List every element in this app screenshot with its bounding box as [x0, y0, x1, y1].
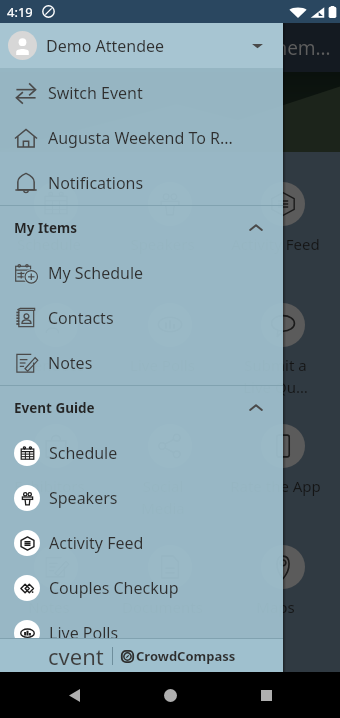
button[interactable]: Demo Attendee [0, 23, 283, 68]
button[interactable]: Speakers [0, 475, 283, 520]
button[interactable]: Switch Event [0, 70, 283, 115]
staticText: Documents [122, 597, 203, 617]
other: Collapse Event Guide [249, 401, 263, 415]
staticText: Switch Event [48, 82, 143, 104]
staticText: My Schedule [48, 262, 144, 284]
button[interactable]: Schedule [0, 152, 114, 273]
staticText: Live Polls [49, 622, 119, 644]
button[interactable]: Couples Checkup [0, 565, 283, 610]
staticText: Notifications [48, 172, 144, 194]
button[interactable]: Speakers [114, 152, 227, 273]
staticText: cvent [48, 641, 104, 671]
button[interactable]: Recent apps [244, 673, 288, 717]
button[interactable]: My Items [0, 206, 283, 250]
button[interactable]: Live Polls [114, 273, 227, 394]
staticText: Schedule [49, 442, 118, 464]
button[interactable]: Documents [114, 515, 227, 636]
button[interactable]: Live Polls [0, 610, 283, 655]
button[interactable]: Activity Feed [227, 152, 340, 273]
staticText: Augusta Weekend To R... [48, 127, 233, 149]
button[interactable]: My Schedule [0, 250, 283, 295]
button[interactable]: Social Media [114, 394, 227, 515]
staticText: My Items [14, 219, 78, 237]
staticText: Notes [28, 597, 70, 617]
button[interactable]: Attendees [0, 273, 114, 394]
staticText: Submit a Live Qu… [243, 355, 308, 398]
staticText: Notes [48, 352, 93, 374]
staticText: Couples Checkup [49, 577, 179, 599]
staticText: Demo Attendee [46, 35, 165, 57]
button[interactable]: Schedule [0, 430, 283, 475]
staticText: Schedule [17, 234, 81, 254]
button[interactable]: Augusta Weekend To R... [0, 115, 283, 160]
button[interactable]: Back [52, 673, 96, 717]
staticText: Event Guide [14, 399, 95, 417]
button[interactable]: Contacts [0, 295, 283, 340]
staticText: CrowdCompass [136, 647, 236, 665]
staticText: Maps [256, 597, 295, 617]
button[interactable]: Submit a Live Qu… [227, 273, 340, 394]
button[interactable]: Rate the App [227, 394, 340, 515]
button[interactable]: Event Guide [0, 386, 283, 430]
button[interactable]: Exhibitors [0, 394, 114, 515]
button[interactable]: Notes [0, 515, 114, 636]
staticText: Rate the App [230, 476, 321, 496]
staticText: Activity Feed [231, 234, 320, 254]
button[interactable]: Home [148, 673, 192, 717]
button[interactable]: Maps [227, 515, 340, 636]
staticText: Exhibitors [14, 476, 85, 496]
staticText: Contacts [48, 307, 114, 329]
button[interactable]: Notifications [0, 160, 283, 205]
staticText: Activity Feed [49, 532, 144, 554]
staticText: Attendees [13, 355, 85, 375]
staticText: Augusta Weekend Them… [98, 35, 331, 61]
staticText: Speakers [49, 487, 118, 509]
staticText: 4:19 [7, 3, 33, 21]
button[interactable]: Notes [0, 340, 283, 385]
button[interactable]: Activity Feed [0, 520, 283, 565]
other: Collapse My Items [249, 221, 263, 235]
